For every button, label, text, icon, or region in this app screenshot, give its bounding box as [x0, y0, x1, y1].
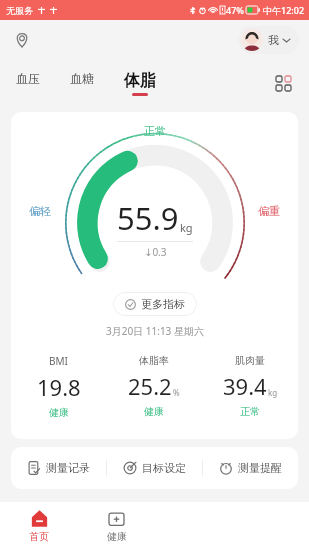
- button[interactable]: 测量提醒: [203, 447, 298, 489]
- staticText: 肌肉量: [235, 354, 265, 367]
- staticText: 25.2: [128, 371, 172, 401]
- button[interactable]: 血糖: [68, 69, 96, 88]
- staticText: 首页: [29, 530, 49, 543]
- staticText: 健康: [49, 406, 69, 419]
- staticText: 55.9: [117, 197, 179, 239]
- staticText: 更多指标: [141, 297, 185, 311]
- button[interactable]: More apps: [269, 69, 297, 97]
- button[interactable]: 体脂: [122, 69, 158, 98]
- staticText: 血糖: [70, 71, 94, 86]
- staticText: kg: [268, 387, 278, 398]
- button[interactable]: 我: [238, 26, 299, 54]
- staticText: 中午12:02: [263, 4, 305, 16]
- staticText: %: [173, 387, 180, 398]
- staticText: 目标设定: [142, 461, 186, 475]
- staticText: 47%: [226, 4, 244, 16]
- staticText: 我: [268, 33, 279, 47]
- staticText: 无服务: [6, 5, 33, 16]
- button[interactable]: 体脂率: [106, 352, 202, 420]
- staticText: 体脂率: [139, 354, 169, 367]
- staticText: 测量记录: [46, 461, 90, 475]
- button[interactable]: 血压: [14, 69, 42, 88]
- button[interactable]: BMI: [11, 352, 106, 421]
- button[interactable]: 目标设定: [107, 447, 202, 489]
- button[interactable]: 测量记录: [11, 447, 106, 489]
- staticText: 健康: [107, 530, 127, 543]
- staticText: 测量提醒: [238, 461, 282, 475]
- staticText: ↓0.3: [144, 245, 167, 259]
- button[interactable]: 更多指标: [113, 292, 197, 316]
- staticText: 正常: [240, 405, 260, 418]
- staticText: 体脂: [124, 71, 156, 91]
- staticText: BMI: [49, 354, 68, 368]
- button[interactable]: 首页: [0, 502, 78, 550]
- button[interactable]: 健康: [78, 502, 155, 550]
- staticText: 血压: [16, 71, 40, 86]
- staticText: 健康: [144, 405, 164, 418]
- staticText: kg: [180, 220, 193, 235]
- button[interactable]: Location: [8, 26, 36, 54]
- staticText: 正常: [144, 124, 166, 138]
- staticText: 3月20日 11:13 星期六: [106, 324, 204, 338]
- button[interactable]: 肌肉量: [202, 352, 298, 420]
- staticText: 19.8: [37, 372, 81, 402]
- staticText: 偏重: [258, 204, 280, 218]
- staticText: 偏轻: [29, 204, 51, 218]
- staticText: 39.4: [223, 371, 267, 401]
